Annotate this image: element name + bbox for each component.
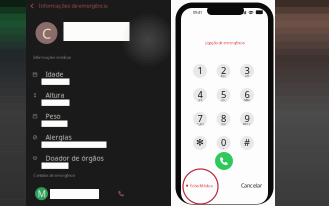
staticText: 7 — [197, 112, 202, 124]
staticText: ✻ — [196, 137, 204, 148]
staticText: Informações de emergência — [38, 2, 107, 9]
staticText: GHI — [197, 98, 202, 102]
button[interactable]: 8 — [216, 112, 230, 126]
staticText: 1 — [197, 64, 202, 76]
button[interactable]: 1 — [193, 64, 207, 78]
staticText: 8 — [221, 112, 226, 124]
staticText: Informações médicas — [33, 54, 71, 60]
staticText: 09:41 — [193, 9, 202, 15]
staticText: Cancelar — [241, 182, 262, 189]
button[interactable]: M — [26, 0, 171, 206]
staticText: Doador de órgãos — [45, 154, 103, 163]
button[interactable]: 9 — [240, 112, 254, 126]
staticText: WXYZ — [243, 122, 251, 126]
staticText: TUV — [221, 122, 226, 126]
staticText: 4 — [197, 88, 202, 100]
staticText: 2 — [221, 64, 226, 76]
staticText: 6 — [244, 88, 249, 100]
button[interactable]: 5 — [216, 88, 230, 102]
staticText: C — [42, 23, 51, 43]
staticText: Ficha Médica — [190, 183, 213, 188]
button[interactable]: Ficha Médica — [186, 183, 226, 188]
button[interactable]: # — [240, 136, 254, 150]
staticText: 0 — [221, 136, 226, 148]
staticText: 3 — [244, 64, 249, 76]
button[interactable]: 3 — [240, 64, 254, 78]
staticText: + — [222, 146, 224, 150]
staticText: Altura — [45, 91, 64, 100]
button[interactable]: 6 — [240, 88, 254, 102]
staticText: 5 — [221, 88, 226, 100]
staticText: DEF — [245, 74, 249, 78]
staticText: ABC — [220, 74, 226, 78]
staticText: Idade — [45, 70, 63, 79]
staticText: M — [37, 187, 45, 200]
staticText: Contatos de emergência — [33, 172, 75, 178]
staticText: Ligação de emergência — [204, 40, 244, 45]
staticText: MNO — [244, 98, 250, 102]
button[interactable]: ✻ — [193, 136, 207, 150]
button[interactable]: 4 — [193, 88, 207, 102]
button[interactable]: 7 — [193, 112, 207, 126]
button[interactable]: Call — [215, 152, 233, 170]
button[interactable]: Cancelar — [229, 182, 262, 189]
button[interactable]: Back — [26, 0, 171, 12]
staticText: # — [244, 136, 250, 148]
staticText: JKL — [221, 98, 225, 102]
staticText: 9 — [244, 112, 249, 124]
staticText: Peso — [45, 112, 60, 121]
button[interactable]: 0 — [216, 136, 230, 150]
staticText: PQRS — [196, 122, 203, 126]
staticText: Alergias — [45, 133, 71, 142]
button[interactable]: 2 — [216, 64, 230, 78]
